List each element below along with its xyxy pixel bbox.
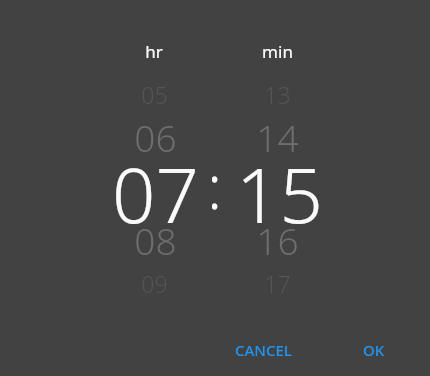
- staticText: 16: [256, 215, 299, 265]
- staticText: 06: [134, 112, 177, 162]
- staticText: 05: [141, 79, 168, 110]
- staticText: 14: [256, 112, 299, 162]
- staticText: 07: [112, 142, 199, 232]
- button[interactable]: CANCEL: [221, 332, 305, 368]
- staticText: CANCEL: [235, 340, 292, 360]
- button[interactable]: OK: [348, 332, 400, 368]
- staticText: :: [207, 145, 222, 227]
- staticText: min: [262, 40, 293, 63]
- button[interactable]: 07: [95, 142, 215, 232]
- button[interactable]: 15: [219, 142, 339, 232]
- staticText: 08: [134, 215, 177, 265]
- staticText: 15: [236, 142, 323, 232]
- staticText: 09: [141, 268, 168, 299]
- staticText: OK: [363, 340, 385, 360]
- staticText: hr: [145, 40, 163, 63]
- staticText: 13: [264, 79, 291, 110]
- staticText: 17: [264, 268, 291, 299]
